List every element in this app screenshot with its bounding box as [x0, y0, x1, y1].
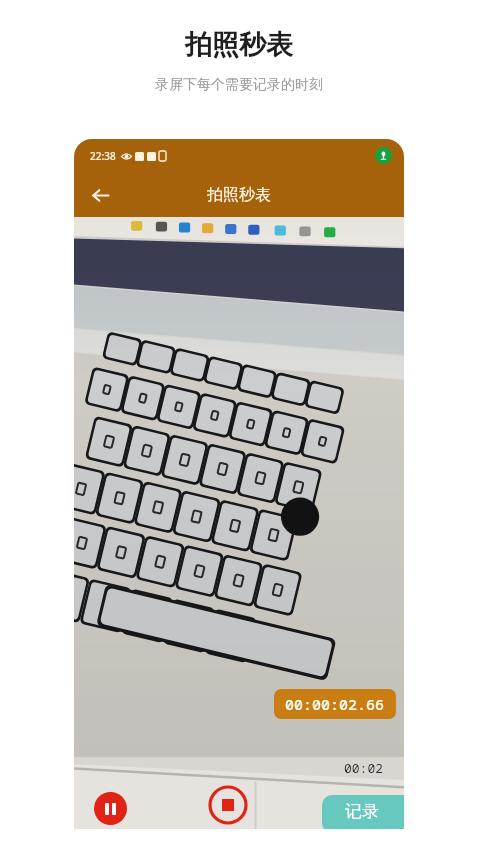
staticText: 拍照秒表 — [185, 28, 293, 62]
button[interactable]: Stop recording — [208, 785, 248, 825]
staticText: 00:02 — [344, 759, 384, 777]
staticText: 拍照秒表 — [207, 185, 271, 205]
button[interactable]: Pause — [94, 792, 127, 825]
button[interactable]: 记录 — [322, 795, 404, 829]
button[interactable]: Back — [82, 177, 118, 213]
staticText: 00:00:02.66 — [285, 694, 385, 714]
staticText: 记录 — [345, 801, 379, 822]
staticText: 22:38 — [90, 149, 116, 163]
button[interactable]: 00:00:02.66 — [274, 689, 396, 719]
staticText: 录屏下每个需要记录的时刻 — [155, 76, 323, 94]
other: Microphone in use — [375, 147, 392, 164]
